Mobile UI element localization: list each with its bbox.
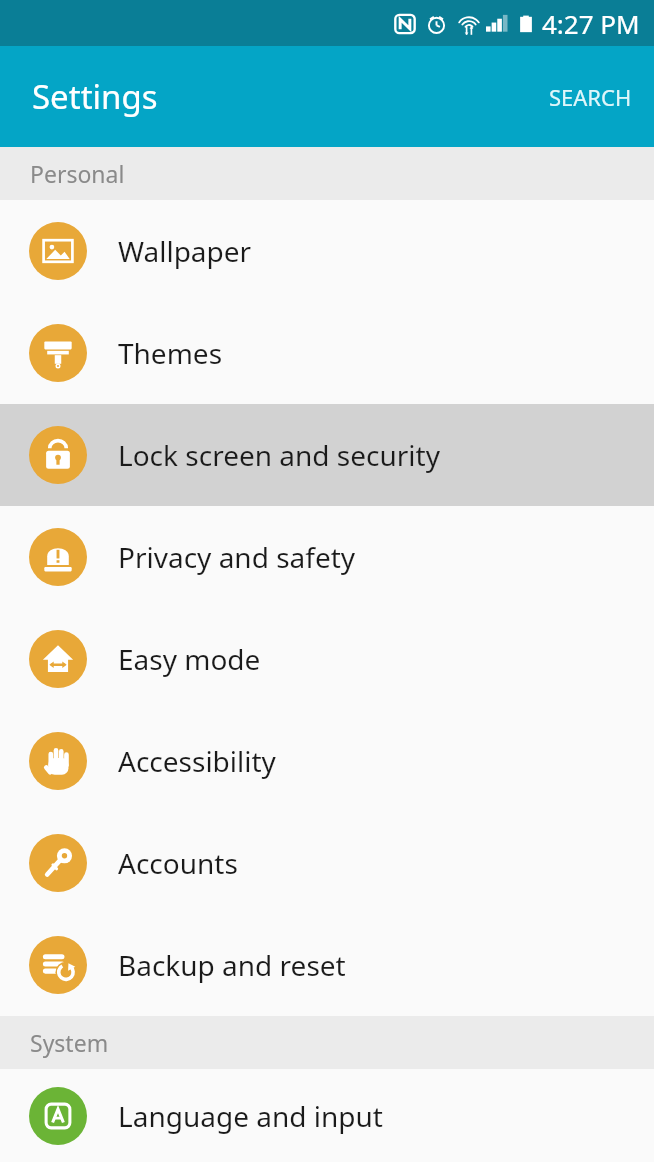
button[interactable]: Privacy and safety	[0, 506, 654, 608]
button[interactable]: Lock screen and security	[0, 404, 654, 506]
staticText: Easy mode	[118, 640, 261, 678]
staticText: Themes	[118, 334, 223, 372]
button[interactable]: Wallpaper	[0, 200, 654, 302]
staticText: SEARCH	[549, 82, 632, 112]
staticText: Accessibility	[118, 742, 276, 780]
button[interactable]: Backup and reset	[0, 914, 654, 1016]
button[interactable]: Easy mode	[0, 608, 654, 710]
button[interactable]: Language and input	[0, 1069, 654, 1162]
staticText: System	[30, 1027, 109, 1058]
staticText: Accounts	[118, 844, 238, 882]
staticText: Wallpaper	[118, 232, 252, 270]
staticText: Settings	[32, 74, 158, 119]
staticText: Language and input	[118, 1097, 383, 1135]
staticText: Lock screen and security	[118, 436, 440, 474]
button[interactable]: Accounts	[0, 812, 654, 914]
button[interactable]: SEARCH	[527, 64, 654, 130]
staticText: Personal	[30, 158, 125, 189]
staticText: 4:27 PM	[542, 6, 640, 41]
staticText: Backup and reset	[118, 946, 346, 984]
button[interactable]: Themes	[0, 302, 654, 404]
button[interactable]: Accessibility	[0, 710, 654, 812]
staticText: Privacy and safety	[118, 538, 356, 576]
